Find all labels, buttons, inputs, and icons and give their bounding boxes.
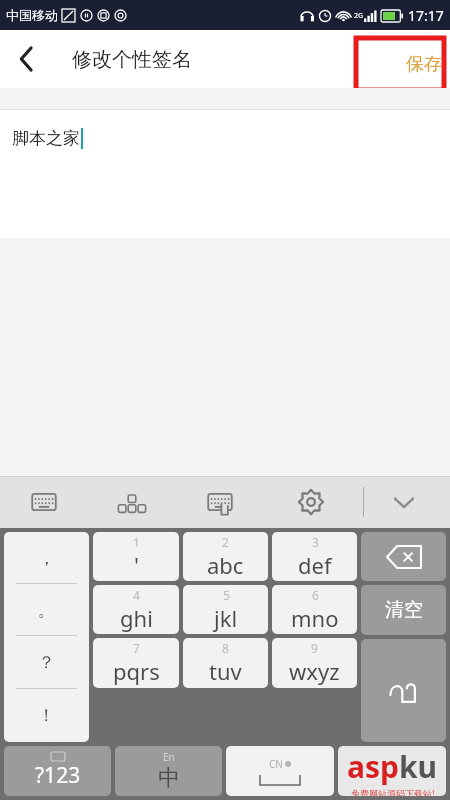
button[interactable]: 保存 xyxy=(356,38,444,90)
staticText: ku xyxy=(399,746,438,787)
staticText: ' xyxy=(134,550,139,580)
button[interactable]: Settings xyxy=(289,480,333,524)
staticText: pqrs xyxy=(113,656,160,686)
staticText: asp xyxy=(347,746,399,787)
staticText: abc xyxy=(207,550,244,580)
button[interactable]: Back xyxy=(0,33,52,85)
button[interactable]: ?123 xyxy=(4,746,111,796)
button[interactable]: Enter xyxy=(361,639,446,742)
button[interactable]: Handwriting xyxy=(198,480,242,524)
staticText: 中国移动 xyxy=(6,7,58,23)
staticText: jkl xyxy=(214,603,238,633)
staticText: 7 xyxy=(133,640,140,656)
staticText: 脚本之家 xyxy=(12,128,80,149)
button[interactable]: asp xyxy=(338,746,446,796)
staticText: En xyxy=(163,750,175,764)
staticText: def xyxy=(298,550,332,580)
staticText: ？ xyxy=(38,652,55,673)
staticText: 。 xyxy=(38,600,55,621)
button[interactable]: Keyboard xyxy=(22,480,66,524)
staticText: ， xyxy=(38,548,55,569)
staticText: ghi xyxy=(120,603,153,633)
staticText: 2G xyxy=(354,11,364,21)
button[interactable]: 2 xyxy=(183,532,268,581)
button[interactable]: En xyxy=(115,746,222,796)
button[interactable]: 7 xyxy=(93,638,179,688)
staticText: CN xyxy=(269,757,283,771)
staticText: 8 xyxy=(222,640,229,656)
staticText: 中 xyxy=(158,764,180,792)
staticText: 1 xyxy=(133,534,140,550)
staticText: 6 xyxy=(312,587,319,603)
staticText: wxyz xyxy=(289,656,340,686)
staticText: 保存 xyxy=(406,53,442,76)
staticText: 修改个性签名 xyxy=(72,47,192,72)
staticText: ！ xyxy=(38,705,55,726)
button[interactable]: 1 xyxy=(93,532,179,581)
button[interactable]: Backspace xyxy=(361,532,446,581)
staticText: 17:17 xyxy=(408,6,444,25)
button[interactable]: 9 xyxy=(272,638,357,688)
button[interactable]: 3 xyxy=(272,532,357,581)
button[interactable]: Arrow keys xyxy=(110,480,154,524)
staticText: 清空 xyxy=(385,598,423,622)
staticText: tuv xyxy=(209,656,242,686)
staticText: 2 xyxy=(222,534,229,550)
staticText: 4 xyxy=(133,587,140,603)
button[interactable]: 清空 xyxy=(361,585,446,635)
staticText: 免费网站源码下载站! xyxy=(351,787,435,796)
button[interactable]: 4 xyxy=(93,585,179,634)
button[interactable]: 5 xyxy=(183,585,268,634)
staticText: mno xyxy=(291,603,339,633)
button[interactable]: Hide keyboard xyxy=(382,480,426,524)
staticText: 3 xyxy=(312,534,319,550)
button[interactable]: 6 xyxy=(272,585,357,634)
button[interactable]: 8 xyxy=(183,638,268,688)
staticText: ?123 xyxy=(35,761,81,790)
button[interactable]: ， xyxy=(4,532,89,742)
staticText: 5 xyxy=(223,587,230,603)
button[interactable]: Space xyxy=(226,746,334,796)
staticText: 9 xyxy=(311,640,318,656)
